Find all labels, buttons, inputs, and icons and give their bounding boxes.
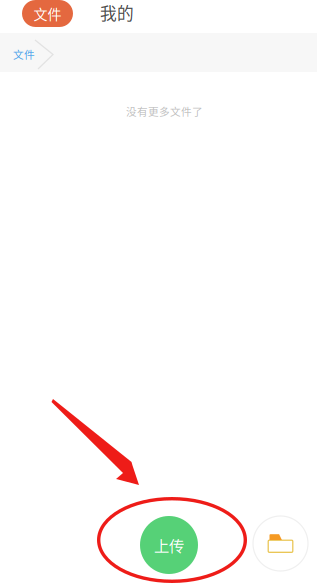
button[interactable]: 文件 xyxy=(22,0,73,27)
button[interactable]: 文件 xyxy=(13,44,53,64)
staticText: 文件 xyxy=(13,46,35,62)
button[interactable]: 上传 xyxy=(140,516,198,574)
staticText: 没有更多文件了 xyxy=(126,103,203,119)
staticText: 上传 xyxy=(154,534,184,556)
staticText: 文件 xyxy=(33,3,61,24)
button[interactable]: Folders xyxy=(253,516,308,571)
staticText: 我的 xyxy=(100,0,134,24)
button[interactable]: 我的 xyxy=(100,0,160,26)
